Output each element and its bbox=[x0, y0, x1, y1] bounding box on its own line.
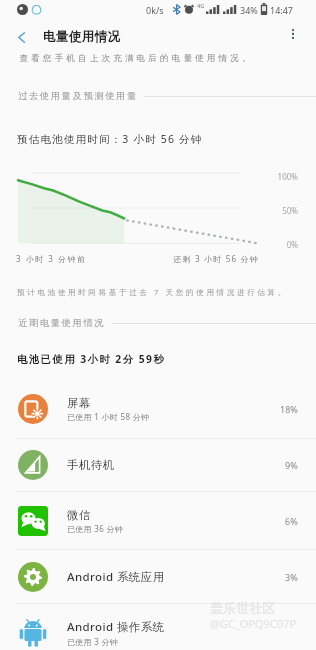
button[interactable]: Back bbox=[8, 24, 34, 50]
staticText: 3% bbox=[285, 571, 298, 583]
staticText: 3 小时 3 分钟前 bbox=[16, 253, 87, 264]
staticText: 已使用 1 小时 58 分钟 bbox=[67, 411, 150, 422]
button[interactable]: 屏幕 bbox=[0, 380, 316, 439]
staticText: 电池已使用 3小时 2分 59秒 bbox=[17, 352, 166, 366]
staticText: @GC_OPQ9C07P bbox=[210, 616, 297, 631]
staticText: 预计电池使用时间将基于过去 7 天您的使用情况进行估算。 bbox=[17, 287, 288, 297]
button[interactable]: Android 系统应用 bbox=[0, 550, 316, 604]
staticText: 0% bbox=[248, 239, 298, 250]
staticText: 电量使用情况 bbox=[43, 29, 121, 45]
staticText: 已使用 3 分钟 bbox=[67, 636, 119, 647]
staticText: 9% bbox=[285, 459, 298, 471]
staticText: 100% bbox=[248, 171, 298, 182]
button[interactable]: Android 操作系统 bbox=[0, 604, 316, 650]
staticText: 14:47 bbox=[270, 4, 294, 16]
staticText: 盖乐世社区 bbox=[210, 600, 275, 616]
staticText: 微信 bbox=[67, 508, 91, 522]
staticText: 已使用 36 分钟 bbox=[67, 523, 124, 534]
staticText: 查看您手机自上次充满电后的电量使用情况。 bbox=[18, 53, 252, 64]
staticText: 50% bbox=[248, 205, 298, 216]
staticText: 还剩 3 小时 56 分钟 bbox=[139, 253, 259, 264]
staticText: 预估电池使用时间：3 小时 56 分钟 bbox=[17, 132, 203, 146]
staticText: 34% bbox=[240, 4, 258, 16]
staticText: 屏幕 bbox=[67, 396, 91, 410]
staticText: 4G bbox=[197, 2, 205, 9]
staticText: 近期电量使用情况 bbox=[18, 317, 106, 329]
button[interactable]: 微信 bbox=[0, 492, 316, 550]
staticText: 过去使用量及预测使用量 bbox=[18, 90, 138, 102]
staticText: 0k/s bbox=[146, 4, 164, 16]
staticText: Android 操作系统 bbox=[67, 619, 165, 635]
staticText: 18% bbox=[280, 403, 298, 415]
staticText: 手机待机 bbox=[67, 458, 115, 472]
button[interactable]: More options bbox=[283, 24, 303, 44]
staticText: Android 系统应用 bbox=[67, 569, 165, 585]
button[interactable]: 手机待机 bbox=[0, 439, 316, 492]
staticText: 6% bbox=[285, 515, 298, 527]
